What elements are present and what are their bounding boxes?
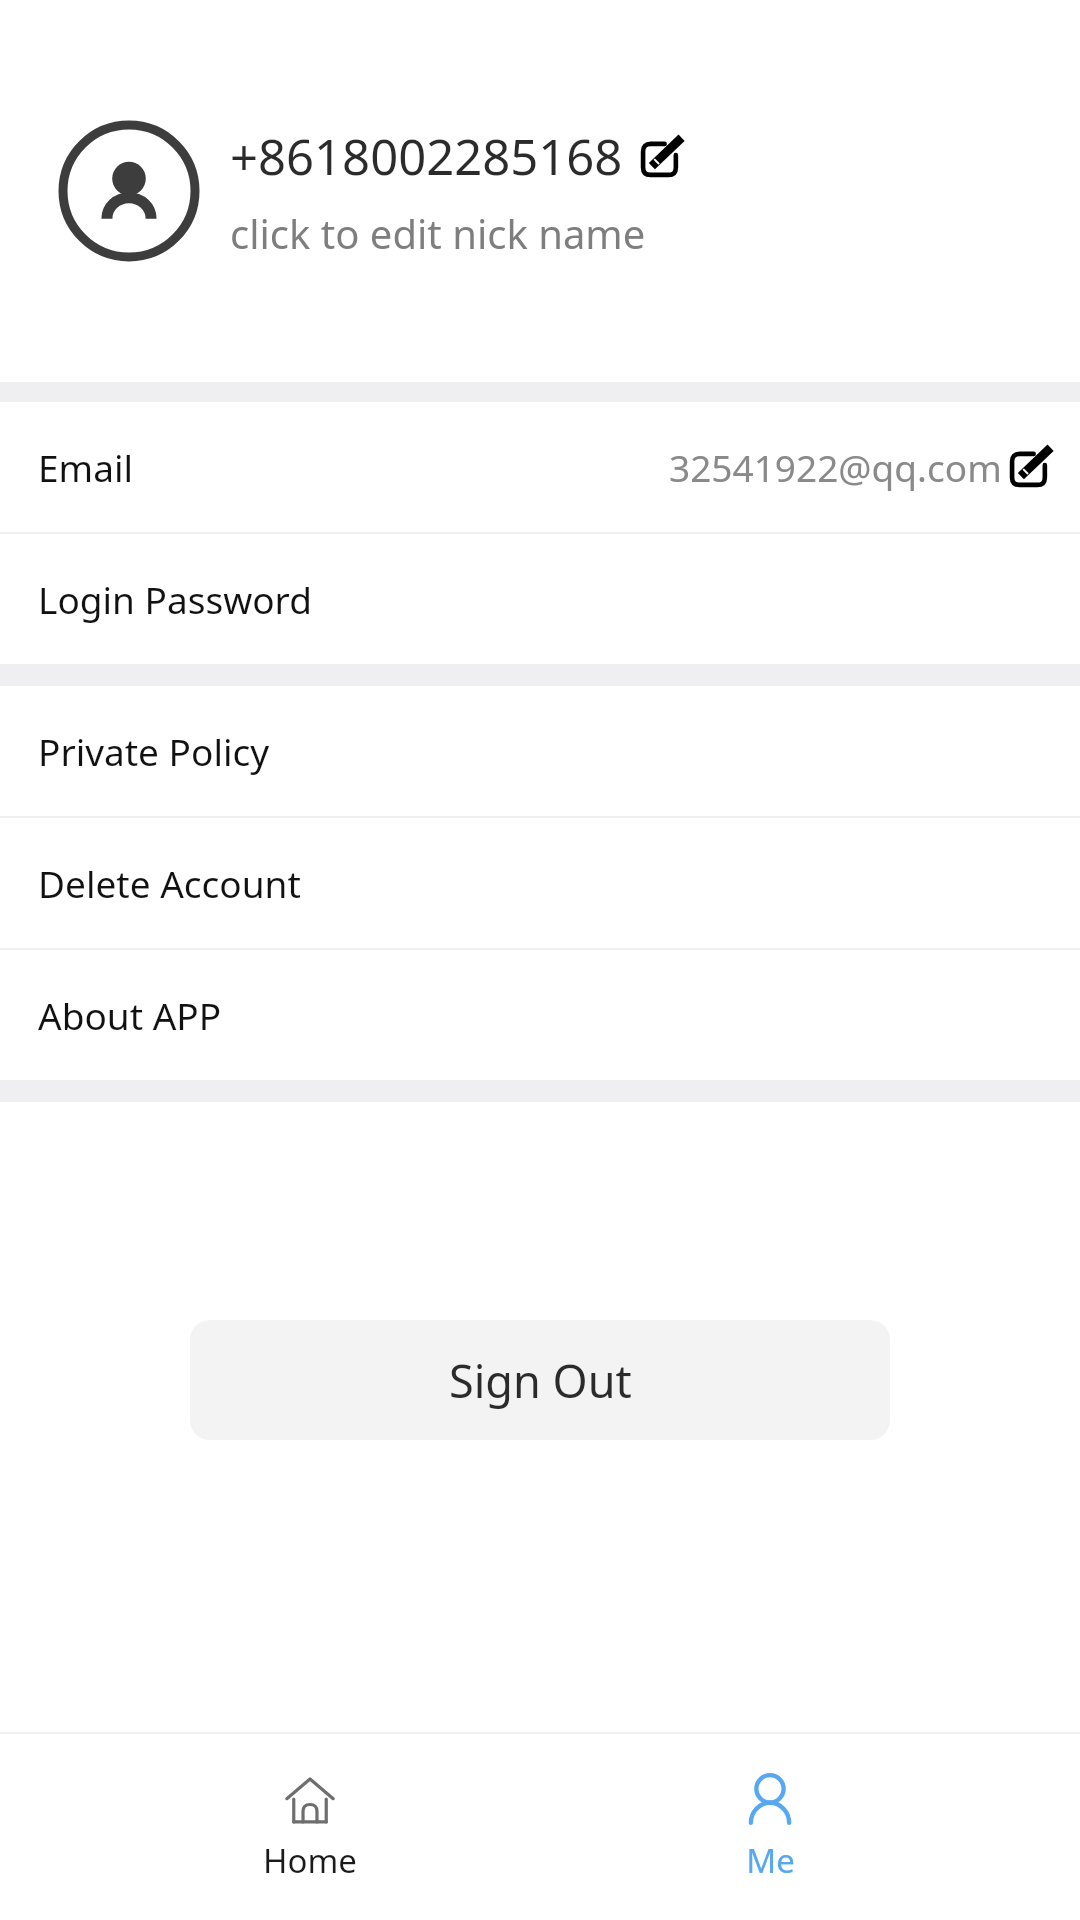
staticText: Sign Out (449, 1350, 632, 1411)
staticText: Delete Account (38, 858, 301, 908)
button[interactable]: Me (620, 1766, 920, 1889)
button[interactable]: Home (160, 1766, 460, 1889)
other: Edit email (1008, 445, 1052, 489)
button[interactable]: Email (0, 402, 1080, 532)
button[interactable]: Private Policy (0, 686, 1080, 816)
button[interactable]: +8618002285168 (0, 0, 1080, 382)
button[interactable]: About APP (0, 950, 1080, 1080)
staticText: click to edit nick name (230, 206, 646, 260)
button[interactable]: Sign Out (190, 1320, 890, 1440)
staticText: Private Policy (38, 726, 270, 776)
staticText: About APP (38, 990, 222, 1040)
staticText: 32541922@qq.com (669, 442, 1002, 492)
other: Edit nick name (639, 135, 683, 179)
button[interactable]: Login Password (0, 534, 1080, 664)
button[interactable]: Delete Account (0, 818, 1080, 948)
staticText: Login Password (38, 574, 312, 624)
staticText: Email (38, 442, 134, 492)
staticText: Home (263, 1838, 357, 1883)
staticText: +8618002285168 (230, 123, 623, 190)
staticText: Me (746, 1838, 795, 1883)
